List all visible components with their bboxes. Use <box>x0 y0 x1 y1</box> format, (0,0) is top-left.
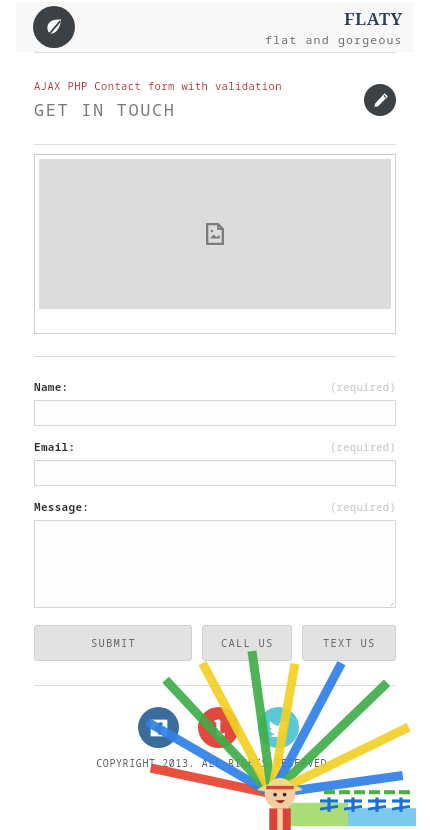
staticText: (required) <box>330 440 396 454</box>
button[interactable]: Tumblr <box>198 707 239 748</box>
button[interactable] <box>34 520 396 608</box>
button[interactable]: SUBMIT <box>34 625 192 661</box>
button[interactable] <box>34 460 396 486</box>
staticText: GET IN TOUCH <box>34 98 176 121</box>
button[interactable]: TEXT US <box>302 625 396 661</box>
button[interactable] <box>34 400 396 426</box>
staticText: TEXT US <box>323 636 376 650</box>
staticText: Name: <box>34 379 69 394</box>
staticText: AJAX PHP Contact form with validation <box>34 79 282 93</box>
staticText: (required) <box>330 500 396 514</box>
button[interactable]: Facebook <box>138 707 179 748</box>
staticText: Message: <box>34 499 90 514</box>
staticText: flat and gorgeous <box>265 32 403 48</box>
button[interactable]: Edit <box>364 84 396 116</box>
button[interactable]: CALL US <box>202 625 292 661</box>
staticText: FLATY <box>344 7 403 30</box>
staticText: CALL US <box>221 636 274 650</box>
staticText: (required) <box>330 380 396 394</box>
staticText: SUBMIT <box>91 636 136 650</box>
button[interactable]: Twitter <box>258 707 299 748</box>
button[interactable]: Flaty home <box>33 6 75 48</box>
button[interactable] <box>34 154 396 334</box>
staticText: Email: <box>34 439 76 454</box>
staticText: COPYRIGHT 2013. ALL RIGHTS RESERVED. <box>0 756 430 770</box>
